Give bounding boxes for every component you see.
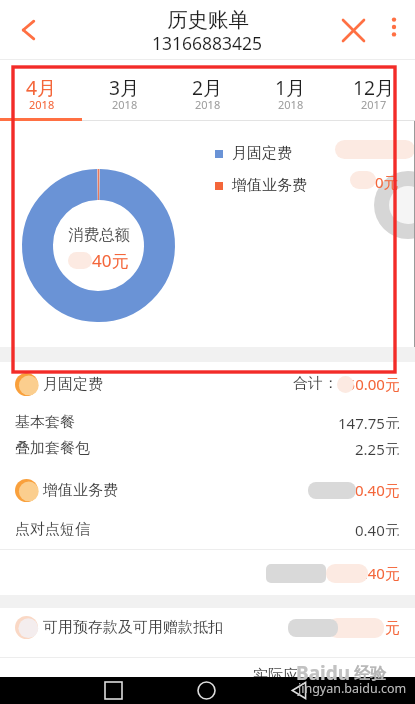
staticText: jingyan.baidu.com [298,680,407,697]
button[interactable]: 叠加套餐包 [0,439,415,455]
button[interactable]: 2月 [166,60,249,118]
button[interactable]: Close [331,8,375,52]
button[interactable]: 增值业务费 [0,468,415,512]
staticText: 0.40元 [355,480,400,500]
staticText: 2.25元 [355,439,400,455]
staticText: 2018 [29,97,55,112]
staticText: 150.00元 [338,374,400,394]
button[interactable]: 4月 [0,60,83,118]
staticText: 12月 [353,74,395,100]
staticText: 经验 [354,664,386,684]
staticText: 2017 [361,97,387,112]
staticText: 增值业务费 [43,481,118,500]
staticText: 3月 [109,74,140,100]
staticText: 1月 [275,74,306,100]
button[interactable]: Recents [93,677,133,704]
staticText: 147.75元 [338,413,400,429]
staticText: 点对点短信 [15,520,90,536]
staticText: 合计： [293,374,338,393]
button[interactable]: Home [186,677,226,704]
button[interactable]: 12月 [332,60,415,118]
staticText: 增值业务费 [232,176,307,195]
staticText: Baidu [296,660,351,686]
button[interactable]: 可用预存款及可用赠款抵扣 [0,608,415,647]
button[interactable]: 3月 [83,60,166,118]
button[interactable]: 基本套餐 [0,413,415,429]
staticText: 可用预存款及可用赠款抵扣 [43,618,223,637]
staticText: 2月 [192,74,223,100]
staticText: 月固定费 [43,375,103,394]
staticText: 152.40元 [338,563,400,583]
staticText: 0.40元 [355,520,400,536]
staticText: 基本套餐 [15,413,75,429]
staticText: 叠加套餐包 [15,439,90,455]
staticText: 2018 [195,97,221,112]
button[interactable]: 月固定费 [0,362,415,406]
staticText: 40元 [92,249,129,272]
staticText: 2018 [112,97,138,112]
staticText: 13166883425 [152,31,263,55]
staticText: 0元 [375,172,399,192]
staticText: 消费总额 [68,225,130,245]
button[interactable]: 点对点短信 [0,520,415,536]
staticText: 小合计： [278,563,338,582]
button[interactable]: Back [279,677,319,704]
staticText: 4月 [26,74,57,100]
staticText: 元 [385,619,400,638]
staticText: 2018 [278,97,304,112]
button[interactable]: Back [6,7,52,53]
button[interactable]: 1月 [249,60,332,118]
staticText: 月固定费 [232,144,292,163]
button[interactable]: More options [375,8,413,46]
staticText: 实际应 [253,666,298,685]
button[interactable]: 实际应 [0,658,415,677]
staticText: 历史账单 [167,7,249,33]
